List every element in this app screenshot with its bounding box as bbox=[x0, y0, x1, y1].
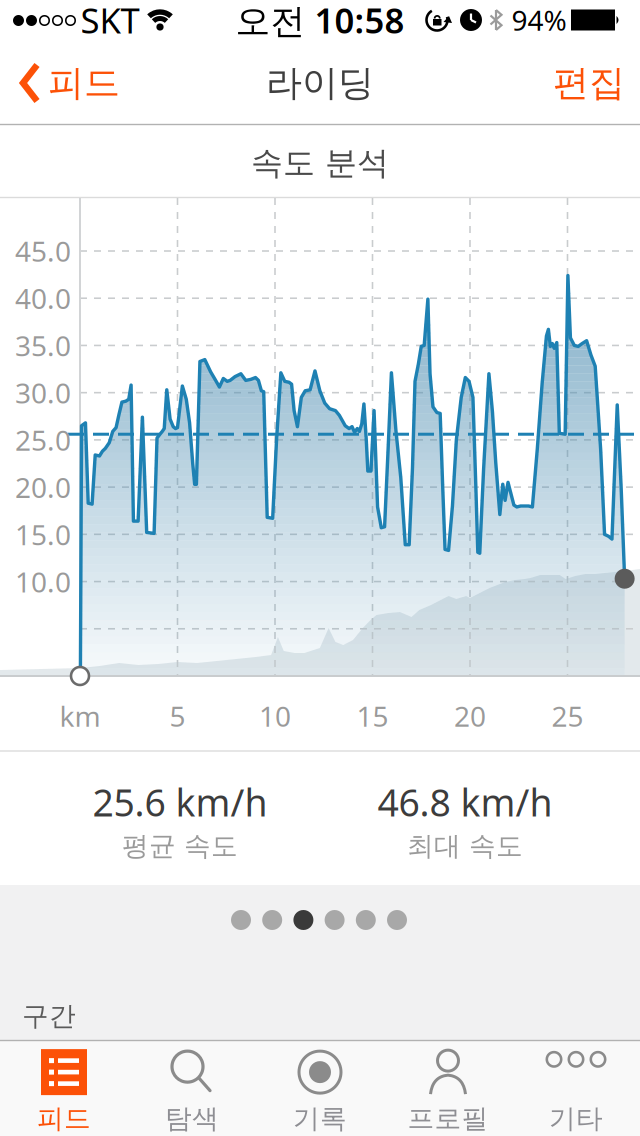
staticText: 10.0 bbox=[15, 563, 71, 600]
button[interactable]: 피드 bbox=[37, 1049, 91, 1135]
button[interactable]: 기타 bbox=[545, 1049, 607, 1135]
staticText: 5 bbox=[169, 697, 185, 735]
staticText: 15.0 bbox=[15, 516, 71, 553]
button[interactable]: 편집 bbox=[553, 61, 625, 105]
staticText: 10 bbox=[259, 697, 291, 735]
staticText: 속도 분석 bbox=[251, 143, 389, 183]
button[interactable]: 탐색 bbox=[165, 1049, 219, 1135]
staticText: 라이딩 bbox=[266, 61, 374, 105]
staticText: 35.0 bbox=[15, 327, 71, 364]
staticText: 피드 bbox=[37, 1102, 91, 1135]
staticText: 기록 bbox=[293, 1102, 347, 1135]
staticText: 피드 bbox=[48, 61, 120, 105]
staticText: 프로필 bbox=[407, 1102, 488, 1135]
staticText: 오전 10:58 bbox=[235, 0, 404, 43]
staticText: 30.0 bbox=[15, 374, 71, 411]
staticText: 25.0 bbox=[15, 421, 71, 458]
staticText: 평균 속도 bbox=[122, 830, 238, 862]
staticText: 구간 bbox=[22, 1000, 76, 1032]
button[interactable]: 기록 bbox=[293, 1049, 347, 1135]
staticText: 최대 속도 bbox=[407, 830, 523, 862]
staticText: 46.8 km/h bbox=[377, 777, 552, 827]
staticText: SKT bbox=[80, 0, 139, 43]
staticText: 25.6 km/h bbox=[92, 777, 267, 827]
button[interactable]: 프로필 bbox=[407, 1049, 488, 1135]
staticText: km bbox=[59, 697, 100, 735]
staticText: 기타 bbox=[549, 1102, 603, 1135]
staticText: 94% bbox=[511, 1, 566, 39]
button[interactable]: 피드 bbox=[20, 61, 120, 105]
staticText: 45.0 bbox=[15, 232, 71, 270]
staticText: 20.0 bbox=[15, 468, 71, 506]
staticText: 15 bbox=[356, 697, 388, 735]
staticText: 40.0 bbox=[15, 280, 71, 317]
staticText: 편집 bbox=[553, 61, 625, 105]
staticText: 20 bbox=[454, 697, 486, 735]
staticText: 탐색 bbox=[165, 1102, 219, 1135]
staticText: 25 bbox=[551, 697, 583, 735]
